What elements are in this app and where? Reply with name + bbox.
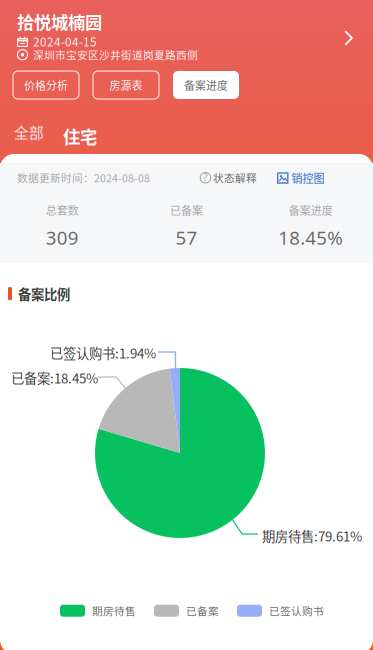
button[interactable]: ? [200,170,257,185]
staticText: 期房待售 [92,603,136,618]
staticText: 已备案 [186,603,219,618]
staticText: 309 [46,225,79,250]
staticText: 已备案:18.45% [11,368,98,387]
button[interactable]: 销控图 [277,170,324,186]
staticText: 数据更新时间：2024-08-08 [17,170,150,185]
staticText: 57 [175,225,197,250]
staticText: 已签认购书:1.94% [50,343,156,362]
staticText: 期房待售:79.61% [262,526,362,545]
staticText: ? [203,170,208,184]
staticText: 深圳市宝安区沙井街道岗夏路西侧 [33,47,198,62]
staticText: 18.45% [278,225,343,250]
staticText: 备案进度 [184,77,228,93]
staticText: 价格分析 [24,77,68,93]
button[interactable]: 全部 [7,118,51,146]
button[interactable]: 房源表 [93,71,159,99]
staticText: 备案进度 [289,202,333,218]
staticText: 2024-04-15 [33,33,97,50]
button[interactable]: 价格分析 [13,71,79,99]
button[interactable]: 备案进度 [173,71,239,99]
staticText: 已签认购书 [269,603,324,618]
staticText: 已备案 [170,202,203,218]
staticText: 状态解释 [213,170,257,185]
staticText: 全部 [14,121,44,143]
staticText: 拾悦城楠园 [17,9,102,34]
staticText: 销控图 [291,170,324,186]
button[interactable]: 住宅 [58,116,102,156]
staticText: 房源表 [109,77,142,93]
staticText: 总套数 [46,202,79,218]
staticText: 住宅 [63,123,97,149]
button[interactable]: 更多 [344,30,353,46]
staticText: 备案比例 [18,284,70,303]
